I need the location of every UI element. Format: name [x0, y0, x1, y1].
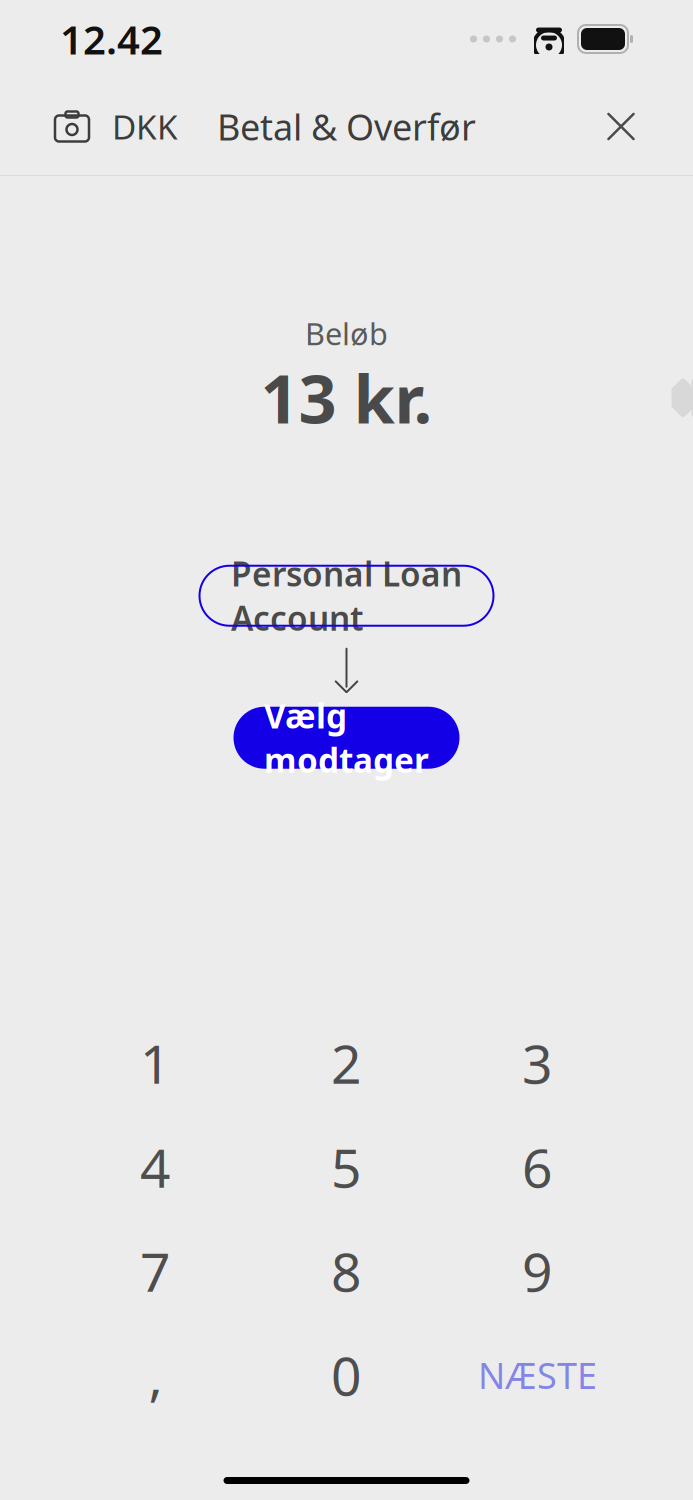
staticText: Betal & Overfør — [217, 103, 476, 150]
button[interactable]: DKK — [100, 98, 190, 154]
button[interactable]: Personal Loan Account — [199, 566, 493, 626]
button[interactable]: 5 — [251, 1115, 442, 1219]
staticText: Personal Loan Account — [231, 551, 462, 640]
button[interactable]: Slet — [673, 377, 693, 418]
button[interactable]: 1 — [60, 1011, 251, 1115]
staticText: 1 — [140, 1028, 171, 1098]
staticText: , — [148, 1340, 162, 1410]
button[interactable]: Scan — [44, 98, 100, 154]
staticText: 12.42 — [60, 12, 163, 65]
button[interactable]: 4 — [60, 1115, 251, 1219]
staticText: Beløb — [305, 313, 388, 354]
button[interactable]: 8 — [251, 1219, 442, 1323]
staticText: 7 — [140, 1236, 171, 1306]
staticText: DKK — [112, 104, 178, 149]
staticText: NÆSTE — [478, 1351, 597, 1399]
button[interactable]: 0 — [251, 1323, 442, 1427]
staticText: 0 — [331, 1340, 362, 1410]
staticText: 2 — [331, 1028, 362, 1098]
button[interactable]: 6 — [442, 1115, 633, 1219]
staticText: 4 — [140, 1132, 171, 1202]
staticText: 9 — [522, 1236, 553, 1306]
button[interactable]: , — [60, 1323, 251, 1427]
staticText: 3 — [522, 1028, 553, 1098]
button[interactable]: 2 — [251, 1011, 442, 1115]
staticText: Vælg modtager — [264, 693, 429, 782]
button[interactable]: 9 — [442, 1219, 633, 1323]
staticText: 8 — [331, 1236, 362, 1306]
staticText: 13 kr. — [260, 353, 432, 442]
button[interactable]: NÆSTE — [442, 1323, 633, 1427]
button[interactable]: 3 — [442, 1011, 633, 1115]
staticText: 5 — [331, 1132, 362, 1202]
staticText: 6 — [522, 1132, 553, 1202]
button[interactable]: Vælg modtager — [233, 707, 459, 769]
button[interactable]: 7 — [60, 1219, 251, 1323]
button[interactable]: Luk — [593, 98, 649, 154]
